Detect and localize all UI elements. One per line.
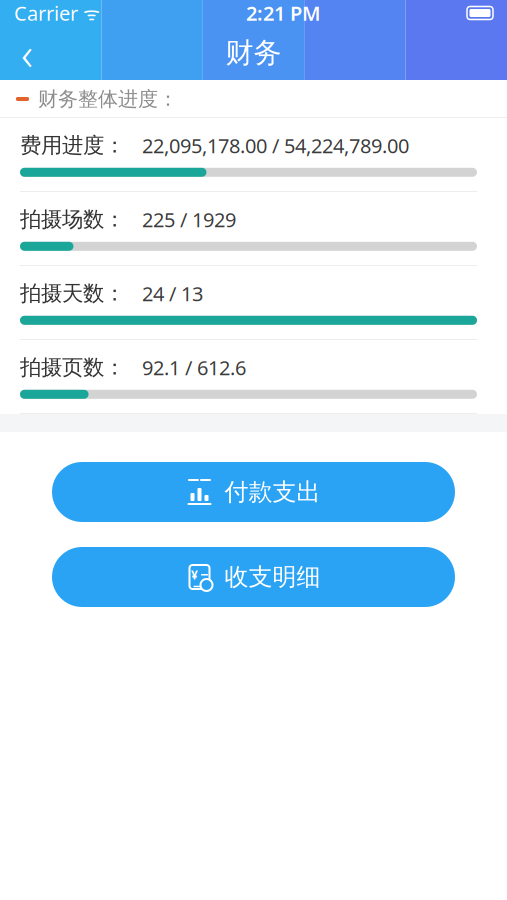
staticText: Carrier — [14, 0, 78, 26]
staticText: 收支明细 — [224, 562, 320, 592]
staticText: ‹ — [21, 23, 33, 83]
button[interactable]: 付款支出 — [52, 462, 455, 522]
staticText: 财务整体进度： — [38, 87, 178, 111]
staticText: ¥ — [191, 567, 198, 583]
staticText: 财务 — [225, 36, 281, 70]
staticText: 拍摄场数： — [20, 206, 125, 233]
button[interactable]: 返回 — [0, 28, 54, 78]
staticText: 拍摄天数： — [20, 280, 125, 307]
staticText: 费用进度： — [20, 132, 125, 159]
staticText: 2:21 PM — [246, 0, 321, 26]
staticText: 22,095,178.00 / 54,224,789.00 — [142, 132, 409, 159]
button[interactable]: ¥ — [52, 547, 455, 607]
staticText: 拍摄页数： — [20, 354, 125, 381]
staticText: ᯤ — [78, 1, 100, 25]
staticText: 付款支出 — [224, 477, 320, 507]
staticText: 92.1 / 612.6 — [142, 354, 246, 381]
staticText: 24 / 13 — [142, 280, 203, 307]
staticText: 225 / 1929 — [142, 206, 236, 233]
